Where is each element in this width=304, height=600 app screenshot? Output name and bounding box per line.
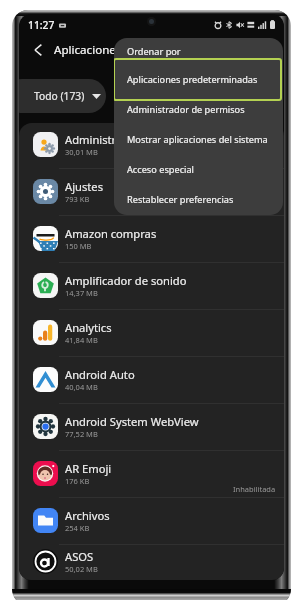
- button[interactable]: Archivos: [19, 497, 284, 544]
- staticText: 254 KB: [65, 523, 90, 533]
- button[interactable]: AR Emoji: [19, 450, 284, 497]
- button[interactable]: Aplicaciones predeterminadas: [114, 64, 283, 94]
- button[interactable]: Android System WebView: [19, 403, 284, 450]
- staticText: Archivos: [65, 508, 110, 523]
- staticText: Analytics: [65, 320, 112, 335]
- staticText: Inhabilitada: [233, 484, 276, 494]
- button[interactable]: Ajustes: [19, 168, 284, 215]
- staticText: Acceso especial: [127, 163, 194, 176]
- button[interactable]: Android Auto: [19, 356, 284, 403]
- staticText: 793 KB: [65, 194, 90, 204]
- button[interactable]: Acceso especial: [114, 154, 283, 184]
- staticText: Amazon compras: [65, 226, 157, 241]
- staticText: 150 MB: [65, 241, 92, 251]
- staticText: 176 KB: [65, 476, 90, 486]
- staticText: 77,52 MB: [65, 429, 98, 439]
- staticText: ASOS: [65, 549, 94, 564]
- button[interactable]: Analytics: [19, 309, 284, 356]
- button[interactable]: Back: [28, 37, 48, 63]
- staticText: Administrador de archivos: [65, 132, 204, 147]
- staticText: Aplicaciones predeterminadas: [127, 73, 258, 86]
- staticText: Ajustes: [65, 179, 104, 194]
- staticText: 30,01 MB: [65, 147, 98, 157]
- staticText: Mostrar aplicaciones del sistema: [127, 133, 268, 146]
- button[interactable]: Amazon compras: [19, 215, 284, 262]
- button[interactable]: Todo (173): [19, 79, 106, 113]
- button[interactable]: Mostrar aplicaciones del sistema: [114, 124, 283, 154]
- staticText: Restablecer preferencias: [127, 193, 234, 206]
- staticText: 41,84 MB: [65, 335, 98, 345]
- staticText: Ordenar por: [127, 45, 181, 58]
- staticText: Android System WebView: [65, 414, 199, 429]
- staticText: 14,37 MB: [65, 288, 98, 298]
- button[interactable]: Administrador de permisos: [114, 94, 283, 124]
- staticText: Amplificador de sonido: [65, 273, 187, 288]
- button[interactable]: Amplificador de sonido: [19, 262, 284, 309]
- staticText: Administrador de permisos: [127, 103, 245, 116]
- staticText: 40,04 MB: [65, 382, 98, 392]
- button[interactable]: Restablecer preferencias: [114, 184, 283, 214]
- staticText: 11:27: [28, 18, 55, 32]
- button[interactable]: Administrador de archivos: [19, 123, 284, 168]
- button[interactable]: ASOS: [19, 544, 284, 578]
- staticText: Aplicaciones: [54, 42, 122, 58]
- staticText: Android Auto: [65, 367, 135, 382]
- staticText: AR Emoji: [65, 461, 112, 476]
- staticText: 50,02 MB: [65, 564, 98, 574]
- staticText: Todo (173): [34, 89, 85, 103]
- button[interactable]: Ordenar por: [114, 38, 283, 64]
